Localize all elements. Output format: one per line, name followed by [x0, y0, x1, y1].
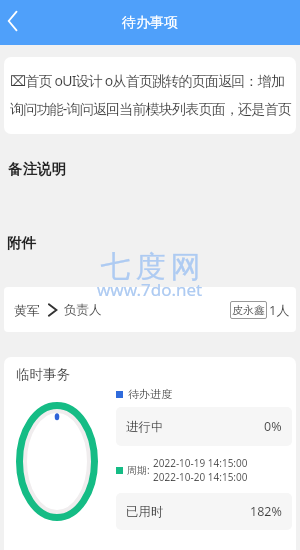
- staticText: 负责人: [64, 302, 102, 318]
- staticText: 182%: [250, 503, 282, 520]
- staticText: 黄军: [14, 302, 40, 318]
- staticText: 临时事务: [16, 366, 70, 383]
- staticText: 皮永鑫: [232, 303, 265, 317]
- staticText: www.7do.net: [97, 278, 203, 301]
- staticText: 已用时: [126, 504, 164, 520]
- staticText: 待办事项: [122, 14, 178, 32]
- staticText: 待办进度: [128, 387, 172, 401]
- staticText: 七度网: [98, 248, 203, 286]
- staticText: 周期:: [127, 463, 150, 477]
- button[interactable]: 已用时: [116, 493, 292, 530]
- button[interactable]: Back: [0, 0, 30, 45]
- staticText: 进行中: [126, 419, 164, 435]
- staticText: 备注说明: [8, 160, 66, 178]
- staticText: ⌧首页 oUI设计 o从首页跳转的页面返回：增加询问功能-询问返回当前模块列表页…: [10, 71, 293, 118]
- staticText: 附件: [7, 234, 36, 252]
- button[interactable]: 进行中: [116, 407, 292, 446]
- button[interactable]: 黄军: [4, 287, 296, 332]
- staticText: 1人: [269, 301, 290, 319]
- staticText: 2022-10-19 14:15:00: [153, 456, 248, 470]
- staticText: 2022-10-20 14:15:00: [153, 470, 248, 484]
- staticText: 0%: [264, 418, 282, 435]
